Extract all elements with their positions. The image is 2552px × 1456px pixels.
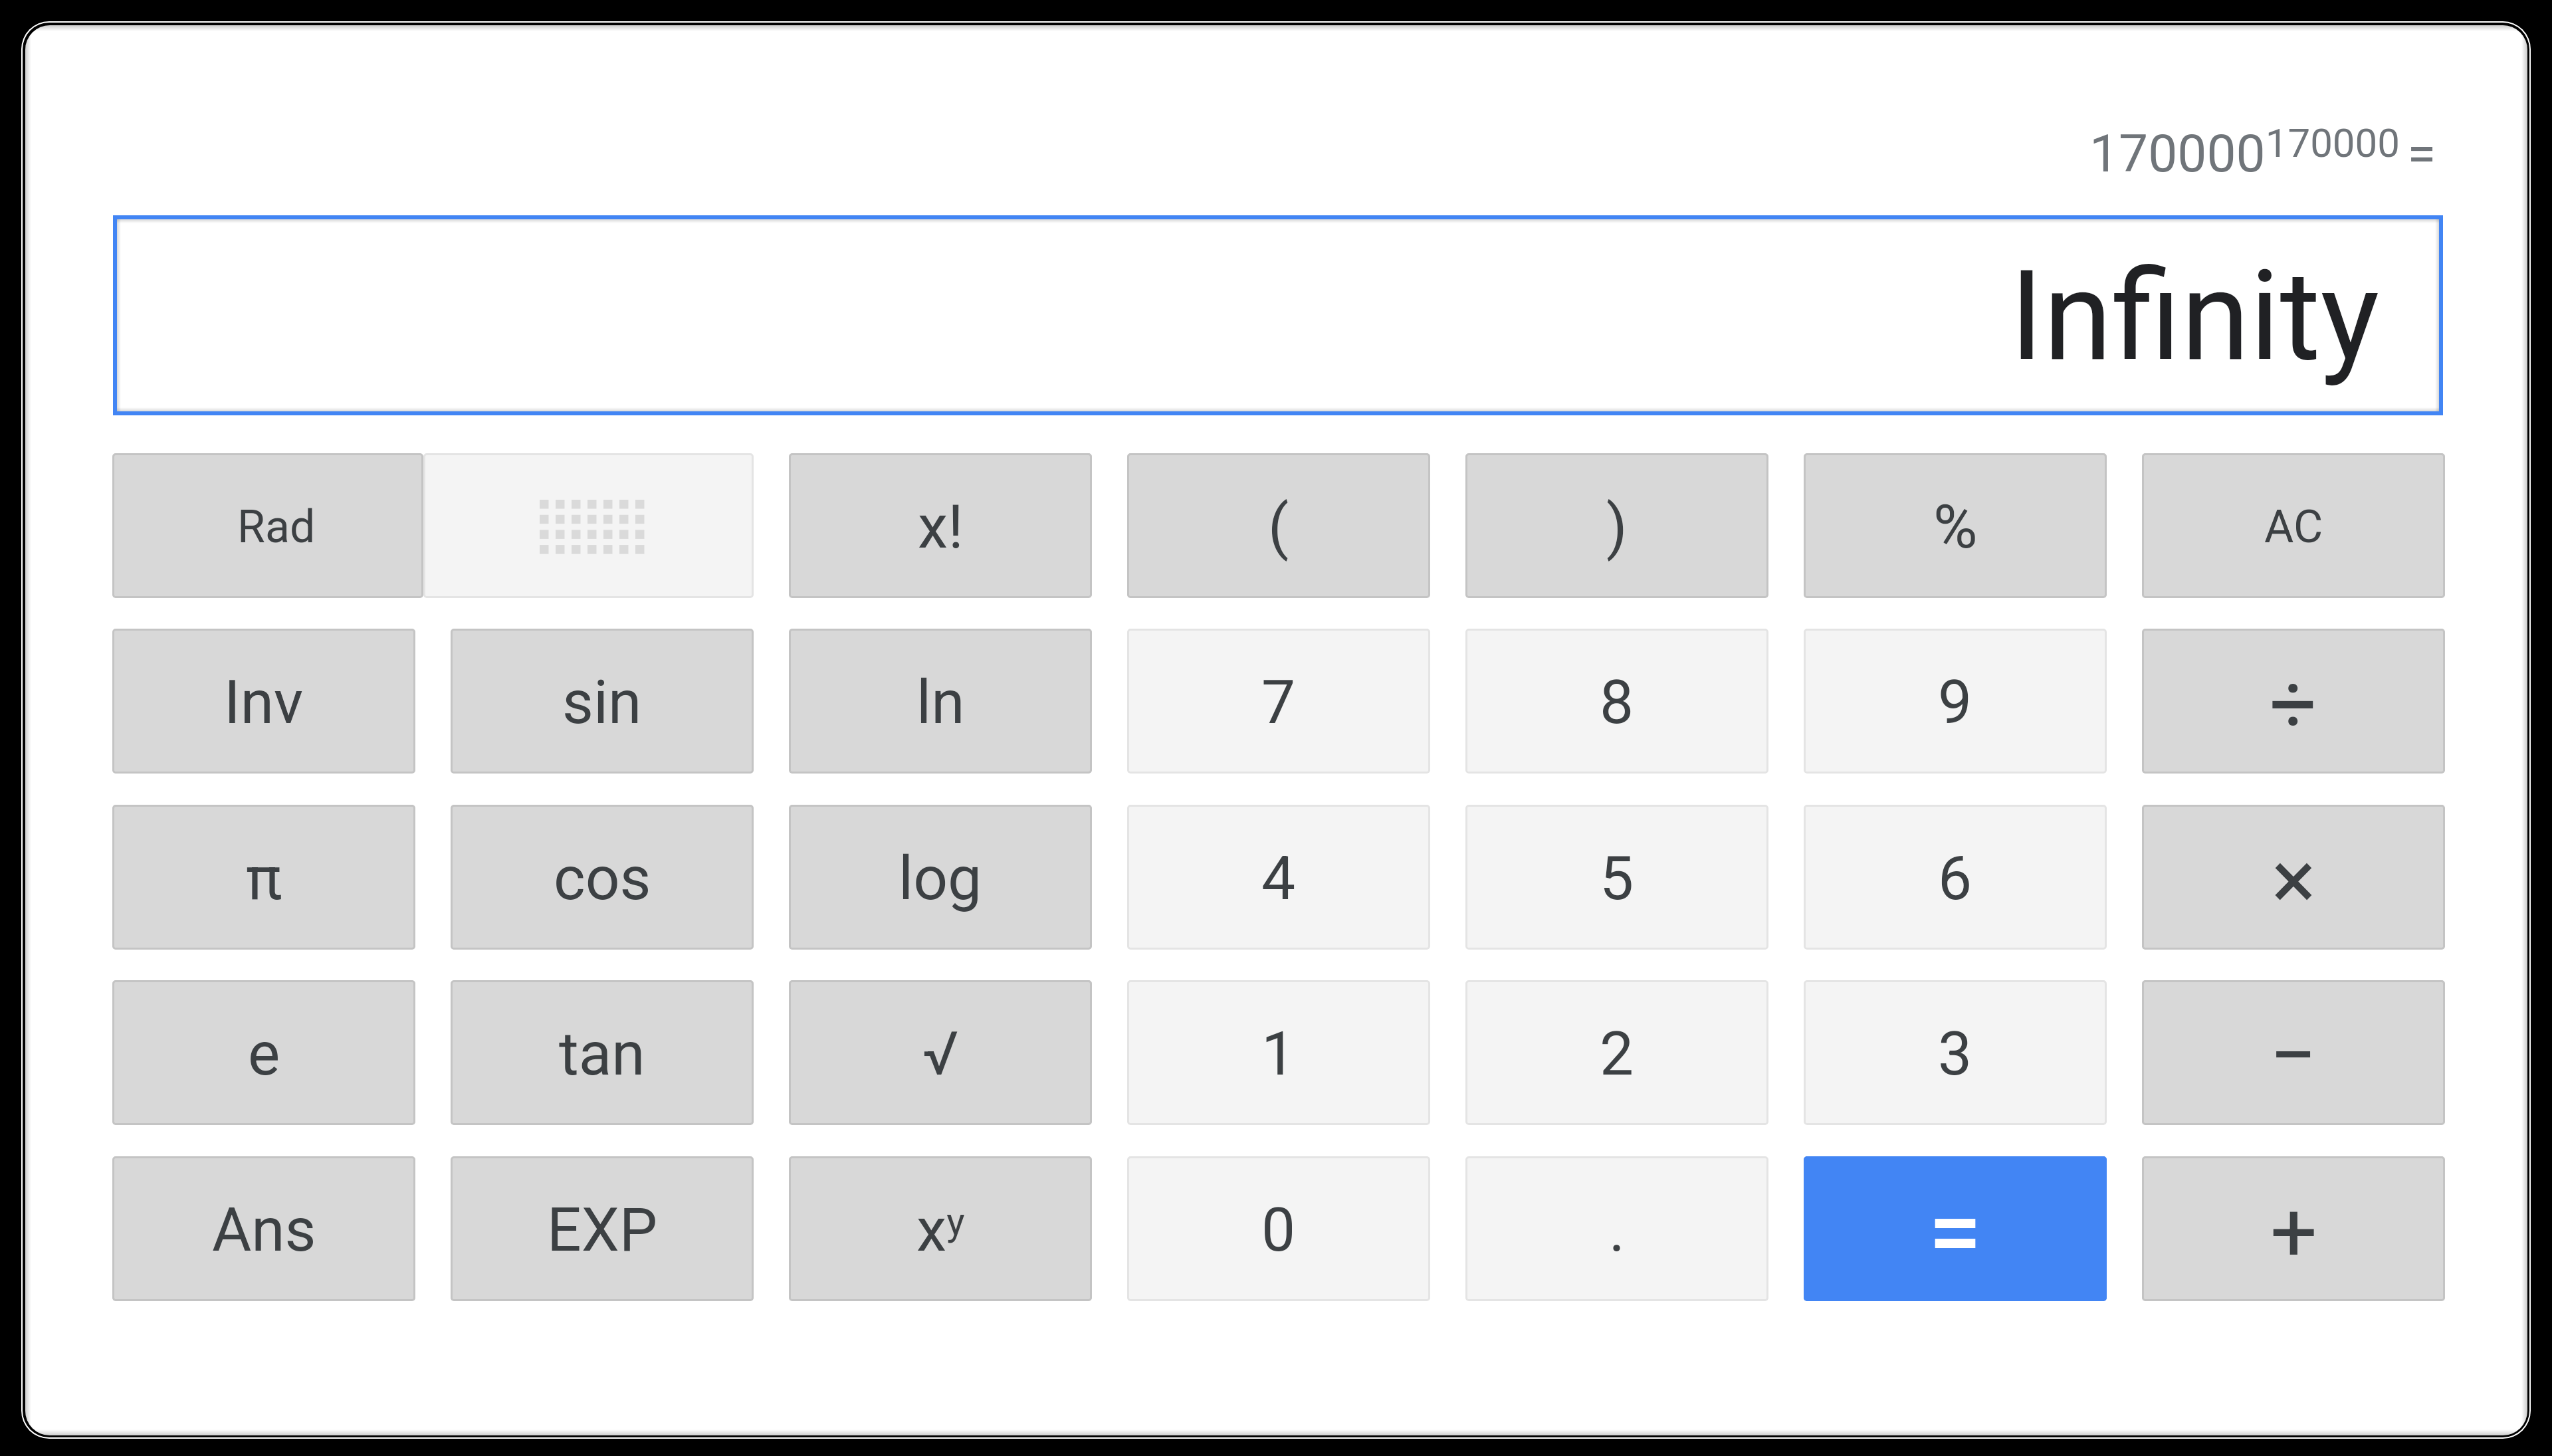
staticText: xy bbox=[916, 1195, 965, 1266]
button[interactable]: 4 bbox=[1127, 805, 1430, 950]
button[interactable]: sin bbox=[451, 629, 754, 774]
staticText: 2 bbox=[1600, 1019, 1634, 1090]
button[interactable]: Inv bbox=[112, 629, 415, 774]
staticText: % bbox=[1933, 492, 1978, 563]
button[interactable]: − bbox=[2142, 980, 2445, 1125]
button[interactable]: 9 bbox=[1804, 629, 2107, 774]
button[interactable]: cos bbox=[451, 805, 754, 950]
staticText: e bbox=[248, 1019, 280, 1090]
staticText: ÷ bbox=[2270, 655, 2317, 752]
staticText: 5 bbox=[1600, 843, 1634, 914]
button[interactable]: 5 bbox=[1465, 805, 1768, 950]
staticText: Rad bbox=[237, 500, 316, 554]
button[interactable]: AC bbox=[2142, 453, 2445, 598]
button[interactable]: 6 bbox=[1804, 805, 2107, 950]
staticText: x! bbox=[918, 492, 964, 563]
button[interactable]: + bbox=[2142, 1156, 2445, 1301]
button[interactable]: 3 bbox=[1804, 980, 2107, 1125]
button[interactable]: 0 bbox=[1127, 1156, 1430, 1301]
button[interactable]: ) bbox=[1465, 453, 1768, 598]
staticText: ) bbox=[1606, 492, 1628, 563]
button[interactable]: = bbox=[1804, 1156, 2107, 1301]
staticText: 170000170000 = bbox=[2089, 120, 2436, 184]
button[interactable]: x! bbox=[789, 453, 1092, 598]
staticText: . bbox=[1609, 1195, 1625, 1266]
button[interactable]: EXP bbox=[451, 1156, 754, 1301]
staticText: 6 bbox=[1938, 843, 1972, 914]
staticText: Infinity bbox=[2010, 244, 2380, 389]
staticText: = bbox=[1929, 1177, 1982, 1287]
button[interactable]: tan bbox=[451, 980, 754, 1125]
button[interactable]: π bbox=[112, 805, 415, 950]
button[interactable]: log bbox=[789, 805, 1092, 950]
staticText: AC bbox=[2264, 500, 2323, 554]
button[interactable]: 2 bbox=[1465, 980, 1768, 1125]
button[interactable]: ( bbox=[1127, 453, 1430, 598]
staticText: 7 bbox=[1261, 667, 1296, 738]
button[interactable]: Infinity bbox=[113, 215, 2443, 415]
button[interactable]: ln bbox=[789, 629, 1092, 774]
staticText: Inv bbox=[224, 667, 304, 738]
button[interactable]: 1 bbox=[1127, 980, 1430, 1125]
button[interactable]: Show keypad bbox=[423, 453, 754, 598]
button[interactable]: × bbox=[2142, 805, 2445, 950]
staticText: π bbox=[246, 843, 282, 914]
staticText: EXP bbox=[547, 1195, 658, 1266]
button[interactable]: xy bbox=[789, 1156, 1092, 1301]
staticText: sin bbox=[562, 667, 642, 738]
button[interactable]: ÷ bbox=[2142, 629, 2445, 774]
button[interactable]: % bbox=[1804, 453, 2107, 598]
button[interactable]: . bbox=[1465, 1156, 1768, 1301]
button[interactable]: 7 bbox=[1127, 629, 1430, 774]
staticText: Ans bbox=[212, 1195, 316, 1266]
staticText: − bbox=[2270, 1007, 2317, 1104]
staticText: ln bbox=[916, 667, 965, 738]
staticText: cos bbox=[554, 843, 651, 914]
staticText: ( bbox=[1268, 492, 1289, 563]
staticText: 1 bbox=[1261, 1019, 1296, 1090]
button[interactable]: Ans bbox=[112, 1156, 415, 1301]
staticText: 8 bbox=[1600, 667, 1634, 738]
staticText: × bbox=[2272, 831, 2316, 928]
button[interactable]: √ bbox=[789, 980, 1092, 1125]
button[interactable]: 8 bbox=[1465, 629, 1768, 774]
staticText: tan bbox=[559, 1019, 645, 1090]
staticText: log bbox=[899, 843, 982, 914]
staticText: 4 bbox=[1261, 843, 1296, 914]
staticText: 9 bbox=[1938, 667, 1972, 738]
button[interactable]: Rad bbox=[112, 453, 423, 598]
button[interactable]: e bbox=[112, 980, 415, 1125]
staticText: 3 bbox=[1938, 1019, 1972, 1090]
staticText: 0 bbox=[1261, 1195, 1296, 1266]
staticText: √ bbox=[922, 1019, 959, 1090]
staticText: + bbox=[2270, 1184, 2317, 1281]
